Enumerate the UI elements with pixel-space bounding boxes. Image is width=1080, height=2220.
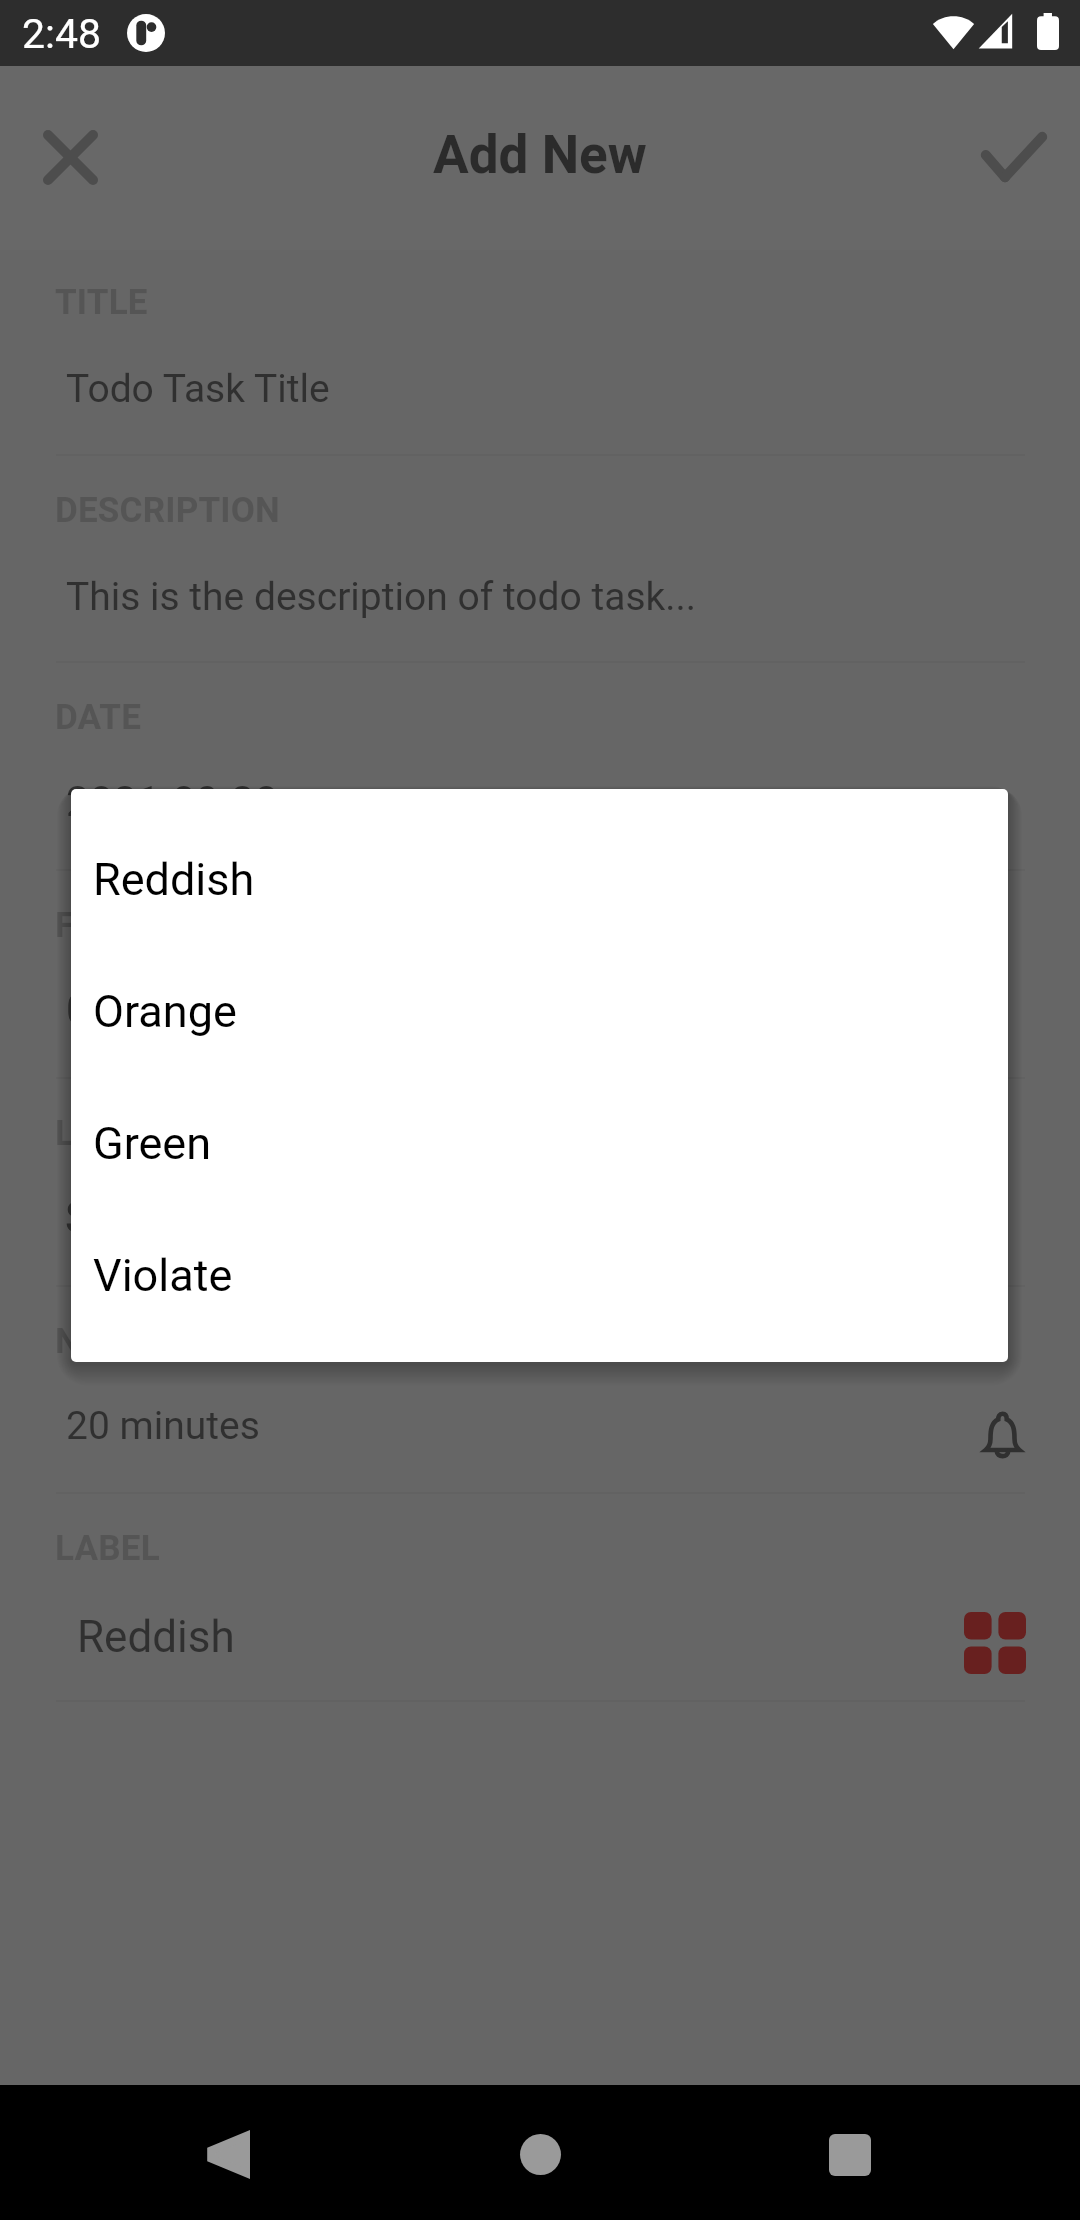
button[interactable]: Reddish <box>71 816 1008 948</box>
button[interactable]: LABEL <box>0 1079 1080 1287</box>
staticText: Green <box>93 1117 212 1170</box>
button[interactable]: Back <box>136 2085 316 2220</box>
staticText: TITLE <box>55 282 148 323</box>
button[interactable]: Recent apps <box>760 2085 940 2220</box>
staticText: 2021-09-20 <box>66 777 279 826</box>
button[interactable]: NOTIFY <box>0 1287 1080 1494</box>
staticText: 2:48 <box>22 10 102 58</box>
staticText: LABEL <box>55 1528 160 1569</box>
button[interactable]: FROM <box>0 871 1080 1079</box>
staticText: FROM <box>55 905 153 946</box>
staticText: DESCRIPTION <box>55 490 281 531</box>
button[interactable]: Close <box>22 109 118 205</box>
staticText: DATE <box>55 697 142 738</box>
staticText: This is the description of todo task... <box>66 574 697 620</box>
button[interactable]: Orange <box>71 948 1008 1080</box>
button[interactable]: Green <box>71 1080 1008 1212</box>
staticText: NOTIFY <box>55 1321 177 1362</box>
button[interactable]: Violate <box>71 1212 1008 1344</box>
staticText: Todo Task Title <box>66 366 330 412</box>
button[interactable]: DATE <box>0 663 1080 871</box>
staticText: 08:00 <box>66 985 171 1034</box>
staticText: Violate <box>93 1249 233 1302</box>
staticText: Sport <box>65 1192 172 1244</box>
staticText: 20 minutes <box>66 1403 260 1449</box>
staticText: Orange <box>93 985 237 1038</box>
staticText: Add New <box>433 124 647 186</box>
button[interactable]: LABEL <box>0 1494 1080 1702</box>
button[interactable]: Save <box>966 110 1062 206</box>
staticText: Reddish <box>93 853 255 906</box>
staticText: Reddish <box>77 1611 235 1663</box>
staticText: LABEL <box>55 1113 160 1154</box>
button[interactable]: TITLE <box>0 248 1080 456</box>
button[interactable]: DESCRIPTION <box>0 456 1080 663</box>
button[interactable]: Home <box>450 2085 630 2220</box>
